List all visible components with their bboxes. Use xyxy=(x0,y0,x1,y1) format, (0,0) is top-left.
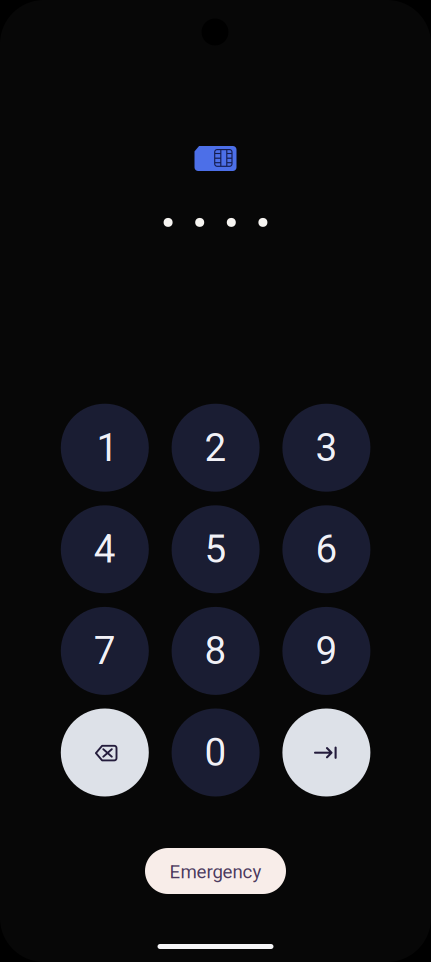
button[interactable]: 6 xyxy=(282,505,370,593)
staticText: 2 xyxy=(205,425,227,470)
staticText: 5 xyxy=(205,527,227,572)
button[interactable]: Emergency xyxy=(145,848,286,894)
staticText: 8 xyxy=(205,628,227,673)
button[interactable]: 8 xyxy=(172,607,260,695)
button[interactable]: Delete xyxy=(61,708,149,796)
staticText: 4 xyxy=(94,527,116,572)
button[interactable]: 7 xyxy=(61,607,149,695)
button[interactable]: 3 xyxy=(282,404,370,492)
button[interactable]: 0 xyxy=(172,708,260,796)
staticText: 0 xyxy=(205,730,227,775)
staticText: 3 xyxy=(315,425,337,470)
button[interactable]: 1 xyxy=(61,404,149,492)
staticText: 6 xyxy=(315,527,337,572)
staticText: 9 xyxy=(315,628,337,673)
button[interactable]: Submit xyxy=(282,708,370,796)
button[interactable]: 2 xyxy=(172,404,260,492)
staticText: 7 xyxy=(94,628,116,673)
button[interactable]: 4 xyxy=(61,505,149,593)
button[interactable]: 5 xyxy=(172,505,260,593)
button[interactable]: 9 xyxy=(282,607,370,695)
staticText: 1 xyxy=(97,425,119,470)
staticText: Emergency xyxy=(169,861,261,883)
